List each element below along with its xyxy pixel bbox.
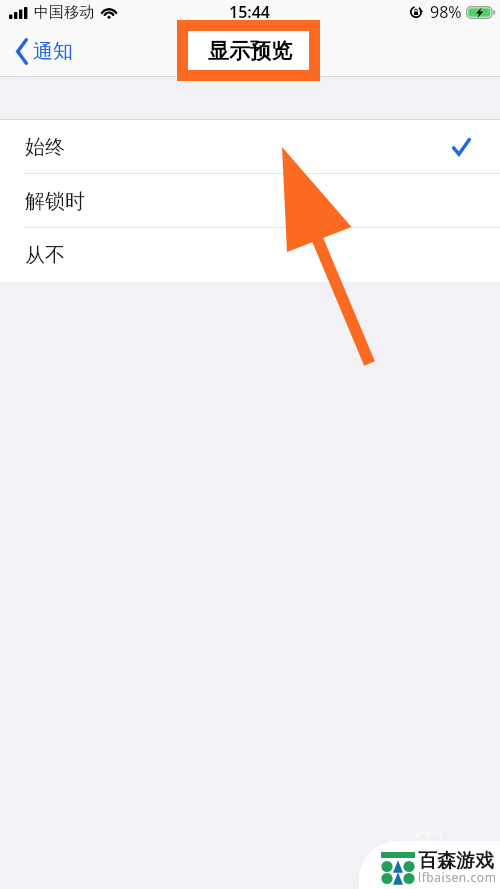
- staticText: 百森游戏: [418, 849, 498, 873]
- staticText: 始终: [25, 135, 65, 160]
- staticText: 从不: [25, 243, 65, 268]
- staticText: 显示预览: [208, 38, 292, 64]
- staticText: 中国移动: [34, 3, 94, 22]
- button[interactable]: 始终: [0, 120, 500, 174]
- staticText: 通知: [33, 39, 73, 64]
- button[interactable]: 返回 通知: [0, 34, 85, 69]
- button[interactable]: 解锁时: [0, 174, 500, 228]
- staticText: 解锁时: [25, 189, 85, 214]
- staticText: 98%: [430, 1, 462, 23]
- button[interactable]: 从不: [0, 228, 500, 282]
- staticText: lfbaisen.com: [418, 869, 498, 885]
- staticText: 15:44: [229, 1, 271, 23]
